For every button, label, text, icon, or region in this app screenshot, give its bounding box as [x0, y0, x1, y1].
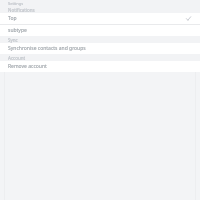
staticText: Settings — [8, 1, 24, 6]
button[interactable]: Top — [0, 13, 200, 24]
button[interactable]: Synchronise contacts and groups — [0, 43, 200, 54]
staticText: Sync — [8, 37, 18, 43]
button[interactable]: subtype — [0, 25, 200, 36]
staticText: Remove account — [8, 63, 47, 70]
other: Selected — [185, 15, 192, 22]
staticText: Notifications — [8, 7, 35, 13]
staticText: Account — [8, 55, 26, 61]
staticText: subtype — [8, 27, 27, 34]
button[interactable]: Remove account — [0, 61, 200, 72]
staticText: Top — [8, 15, 17, 22]
staticText: Synchronise contacts and groups — [8, 45, 86, 52]
